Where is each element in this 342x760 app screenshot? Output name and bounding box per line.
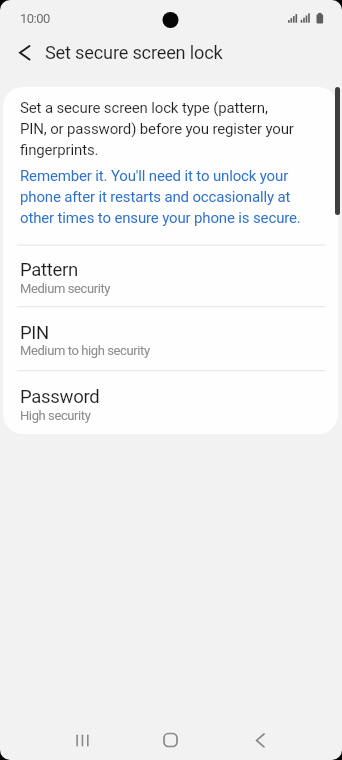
button[interactable]: Pattern (3, 246, 338, 306)
staticText: Medium to high security (20, 343, 150, 358)
button[interactable] (234, 718, 282, 760)
button[interactable] (58, 718, 106, 760)
button[interactable]: Password (3, 371, 338, 434)
staticText: High security (20, 408, 91, 423)
staticText: Password (20, 386, 100, 408)
staticText: Set secure screen lock (45, 42, 223, 63)
staticText: Medium security (20, 281, 111, 296)
button[interactable] (146, 718, 194, 760)
staticText: Set a secure screen lock type (pattern, … (20, 99, 294, 158)
staticText: PIN (20, 322, 49, 344)
button[interactable] (6, 39, 40, 67)
staticText: Pattern (20, 259, 78, 281)
button[interactable]: PIN (3, 307, 338, 370)
staticText: Remember it. You'll need it to unlock yo… (20, 167, 301, 226)
staticText: 10:00 (20, 11, 50, 26)
